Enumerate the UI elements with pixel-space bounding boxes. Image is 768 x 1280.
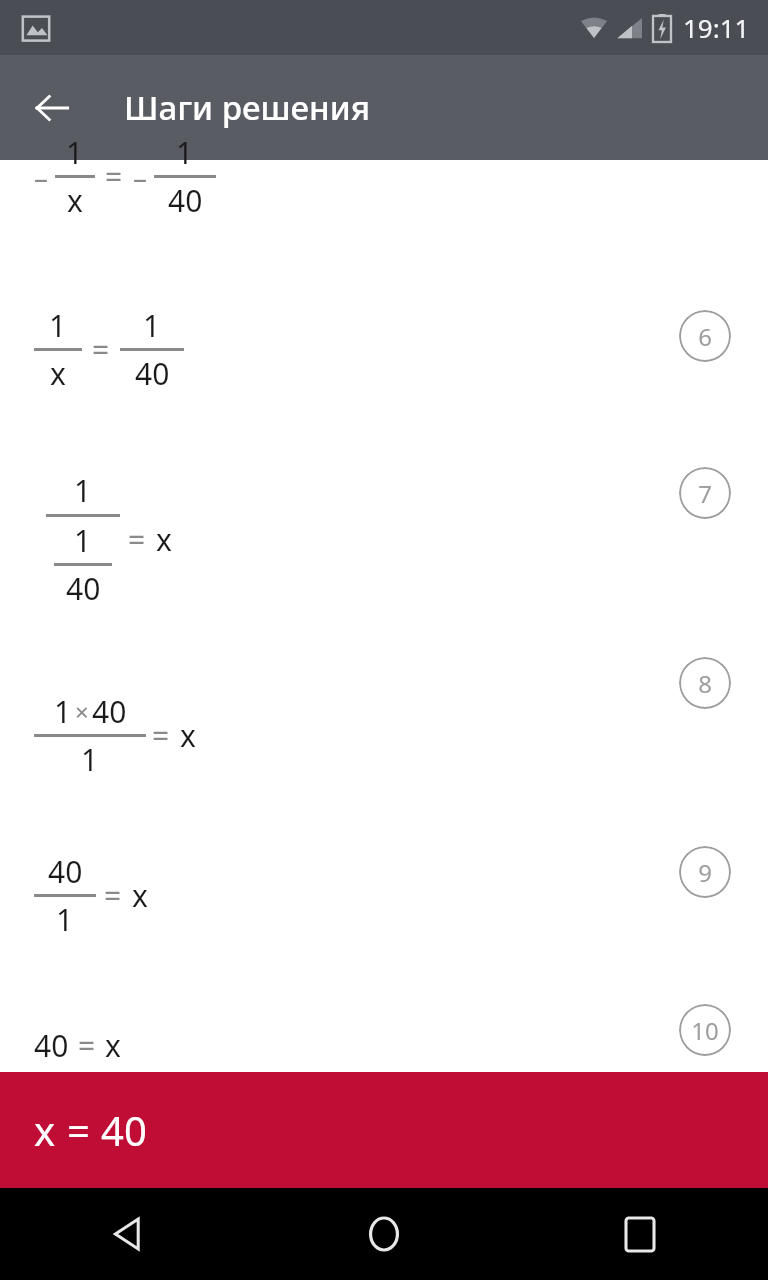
staticText: = — [92, 329, 110, 370]
staticText: x — [50, 353, 66, 394]
staticText: x — [156, 519, 172, 560]
button[interactable]: 1 — [0, 660, 768, 810]
staticText: x — [67, 180, 83, 221]
button[interactable]: Recent apps — [601, 1195, 679, 1273]
staticText: 40 — [168, 180, 203, 221]
button[interactable]: – — [0, 116, 768, 236]
staticText: 40 — [135, 353, 170, 394]
staticText: = — [152, 715, 170, 756]
staticText: 1 — [74, 470, 92, 511]
staticText: 1 — [143, 305, 161, 346]
staticText: x — [34, 1103, 56, 1157]
staticText: 11 — [691, 1157, 719, 1190]
staticText: 40 — [48, 851, 83, 892]
staticText: x — [180, 715, 196, 756]
staticText: 1 — [49, 305, 67, 346]
staticText: 10 — [691, 1014, 719, 1047]
staticText: – — [34, 158, 49, 196]
button[interactable]: 40 — [0, 820, 768, 970]
staticText: 6 — [698, 320, 712, 353]
staticText: × — [75, 695, 89, 728]
button[interactable]: 8 — [679, 657, 731, 709]
staticText: 1 — [176, 132, 194, 173]
button[interactable]: 9 — [679, 846, 731, 898]
staticText: 1 — [74, 520, 92, 561]
staticText: 40 — [101, 1103, 147, 1157]
staticText: 1 — [81, 739, 99, 780]
button[interactable]: 7 — [679, 467, 731, 519]
button[interactable]: Back — [89, 1195, 167, 1273]
staticText: 1 — [66, 132, 84, 173]
button[interactable]: Home — [345, 1195, 423, 1273]
button[interactable]: 1 — [0, 432, 768, 647]
staticText: 1 — [54, 691, 72, 732]
staticText: = — [67, 1103, 90, 1157]
button[interactable]: 10 — [679, 1004, 731, 1056]
staticText: 40 — [34, 1025, 69, 1066]
staticText: = — [104, 875, 122, 916]
staticText: 1 — [56, 899, 74, 940]
staticText: 7 — [698, 477, 712, 510]
staticText: 8 — [698, 667, 712, 700]
staticText: = — [128, 519, 146, 560]
button[interactable]: 6 — [679, 310, 731, 362]
staticText: = — [105, 156, 123, 197]
staticText: Шаги решения — [124, 85, 371, 130]
staticText: x — [105, 1025, 121, 1066]
staticText: 40 — [66, 568, 101, 609]
button[interactable]: 1 — [0, 274, 768, 424]
staticText: 40 — [92, 691, 127, 732]
button[interactable]: Назад — [16, 72, 88, 144]
staticText: x — [132, 875, 148, 916]
button[interactable]: 40 — [0, 990, 768, 1100]
button[interactable]: 11 — [679, 1147, 731, 1199]
staticText: 19:11 — [683, 10, 750, 45]
staticText: = — [78, 1025, 96, 1066]
staticText: 9 — [698, 856, 712, 889]
staticText: – — [133, 158, 148, 196]
button[interactable]: x — [0, 1072, 768, 1188]
